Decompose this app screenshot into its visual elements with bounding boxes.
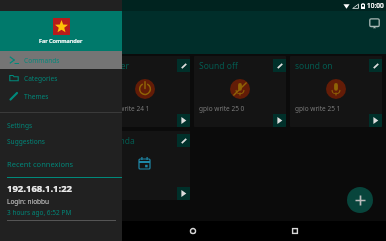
button[interactable]: Recents [285,221,305,241]
button[interactable]: Settings [0,117,122,133]
staticText: 3 hours ago, 6:52 PM [7,208,72,217]
button[interactable]: Commands [0,51,122,69]
staticText: gpio write 24 0 [9,104,55,113]
button[interactable]: Run [369,114,382,127]
staticText: 10:00 [367,1,384,10]
staticText: gpio write 24 1 [104,104,150,113]
staticText: sound on [295,60,333,72]
button[interactable]: Suggestions [0,133,122,149]
staticText: Agenda [9,135,40,147]
button[interactable]: Power [99,56,190,127]
button[interactable]: Edit [177,134,190,147]
staticText: Power [104,60,130,72]
staticText: Far Commander [39,37,83,45]
staticText: 192.168.1.1:22 [7,182,73,195]
button[interactable]: Run [177,114,190,127]
staticText: Agenda [104,135,135,147]
staticText: Sound off [199,60,238,72]
staticText: Categories [24,74,58,83]
button[interactable]: Agenda [4,131,95,200]
button[interactable]: Run [273,114,286,127]
staticText: gpio write 25 1 [295,104,341,113]
staticText: gpio write 25 0 [199,104,245,113]
button[interactable]: Sound off [194,56,286,127]
button[interactable]: Power off [4,56,95,127]
staticText: Power off [9,60,48,72]
staticText: Settings [7,121,33,130]
button[interactable]: Edit [82,59,95,72]
button[interactable]: Desktop [363,12,385,34]
button[interactable]: Run [177,187,190,200]
staticText: Themes [24,92,49,101]
button[interactable]: Categories [0,69,122,87]
button[interactable]: Home [183,221,203,241]
staticText: Recent connexions [7,159,74,169]
button[interactable]: Add command [347,187,373,213]
staticText: Commands [24,56,60,65]
staticText: Login: niobbu [7,197,50,206]
button[interactable]: Edit [369,59,382,72]
button[interactable]: Agenda [99,131,190,200]
button[interactable]: Themes [0,87,122,105]
button[interactable]: Edit [177,59,190,72]
button[interactable]: sound on [290,56,382,127]
button[interactable]: Edit [273,59,286,72]
staticText: Suggestions [7,137,45,146]
